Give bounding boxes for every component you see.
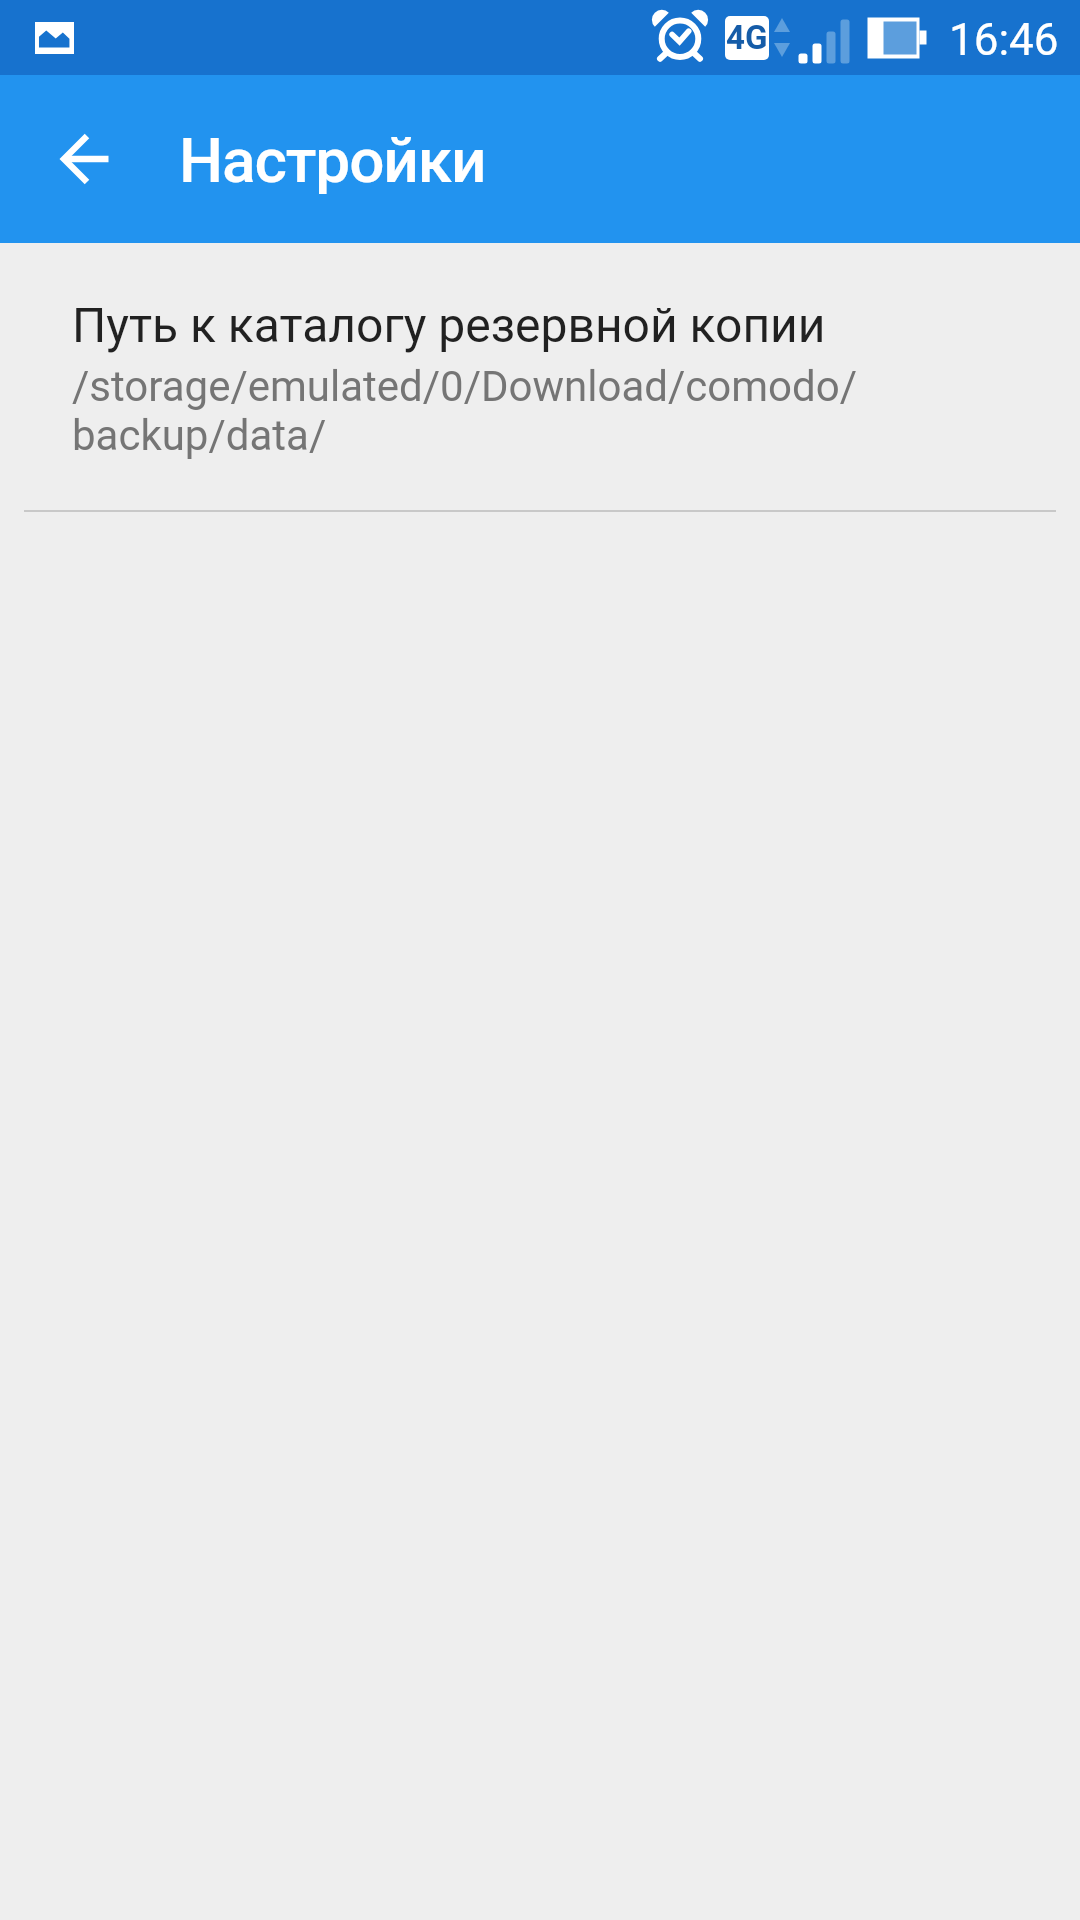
- button[interactable]: Путь к каталогу резервной копии: [0, 243, 1080, 510]
- staticText: Настройки: [179, 124, 486, 197]
- staticText: 4G: [726, 18, 768, 57]
- staticText: Путь к каталогу резервной копии: [72, 297, 826, 353]
- staticText: 16:46: [949, 14, 1059, 66]
- button[interactable]: Back: [12, 87, 156, 231]
- staticText: /storage/emulated/0/Download/comodo/ bac…: [72, 362, 857, 460]
